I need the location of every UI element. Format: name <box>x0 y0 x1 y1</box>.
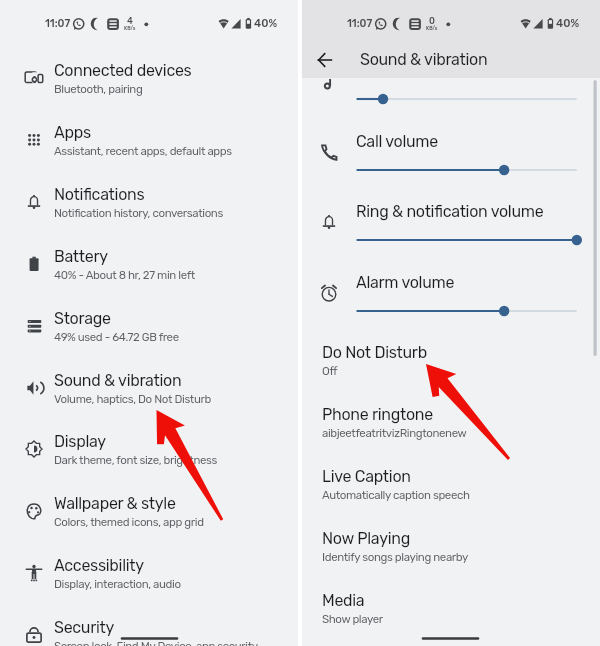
staticText: Apps <box>54 123 91 142</box>
staticText: Sound & vibration <box>54 371 182 390</box>
button[interactable]: Storage <box>0 306 298 350</box>
button[interactable]: Phone ringtone <box>302 402 600 446</box>
button[interactable]: Media <box>302 588 600 632</box>
staticText: Identify songs playing nearby <box>322 550 468 564</box>
staticText: Battery <box>54 247 108 266</box>
staticText: Ring & notification volume <box>356 202 544 221</box>
staticText: Security <box>54 618 115 637</box>
staticText: 40% <box>556 17 580 30</box>
staticText: 11:07 <box>347 17 373 29</box>
staticText: 40% - About 8 hr, 27 min left <box>54 268 195 282</box>
staticText: aibjeetfeatritvizRingtonenew <box>322 426 467 440</box>
staticText: Automatically caption speech <box>322 488 470 502</box>
button[interactable] <box>302 91 600 107</box>
button[interactable] <box>302 162 600 178</box>
staticText: Bluetooth, pairing <box>54 82 143 96</box>
staticText: Phone ringtone <box>322 405 433 424</box>
staticText: Connected devices <box>54 61 192 80</box>
button[interactable]: Call volume <box>302 129 600 157</box>
staticText: Display, interaction, audio <box>54 577 181 591</box>
staticText: Media <box>322 591 365 610</box>
staticText: Display <box>54 432 106 451</box>
button[interactable] <box>302 232 600 248</box>
button[interactable]: Battery <box>0 244 298 288</box>
button[interactable]: Notifications <box>0 182 298 226</box>
staticText: Screen lock, Find My Device, app securit… <box>54 639 258 646</box>
staticText: Storage <box>54 309 111 328</box>
button[interactable]: Back <box>311 46 339 74</box>
staticText: 11:07 <box>45 17 71 29</box>
staticText: Assistant, recent apps, default apps <box>54 144 232 158</box>
button[interactable]: Apps <box>0 120 298 164</box>
staticText: Call volume <box>356 132 438 151</box>
button[interactable]: Ring & notification volume <box>302 199 600 227</box>
staticText: Dark theme, font size, brightness <box>54 453 217 467</box>
staticText: 49% used - 64.72 GB free <box>54 330 179 344</box>
staticText: Show player <box>322 612 383 626</box>
staticText: Now Playing <box>322 529 410 548</box>
button[interactable]: Live Caption <box>302 464 600 508</box>
button[interactable]: Alarm volume <box>302 270 600 298</box>
button[interactable]: Sound & vibration <box>0 368 298 412</box>
staticText: Colors, themed icons, app grid <box>54 515 204 529</box>
staticText: 4 <box>127 16 133 27</box>
staticText: KB/s <box>124 25 136 31</box>
button[interactable]: Wallpaper & style <box>0 491 298 535</box>
staticText: Off <box>322 364 337 378</box>
staticText: 0 <box>429 16 435 27</box>
staticText: Notifications <box>54 185 145 204</box>
button[interactable]: Accessibility <box>0 553 298 597</box>
staticText: Accessibility <box>54 556 144 575</box>
staticText: Notification history, conversations <box>54 206 223 220</box>
staticText: Alarm volume <box>356 273 455 292</box>
button[interactable]: Security <box>0 615 298 646</box>
staticText: Volume, haptics, Do Not Disturb <box>54 392 211 406</box>
staticText: KB/s <box>426 25 438 31</box>
button[interactable] <box>302 303 600 319</box>
staticText: Live Caption <box>322 467 411 486</box>
button[interactable]: Now Playing <box>302 526 600 570</box>
staticText: Wallpaper & style <box>54 494 176 513</box>
staticText: 40% <box>254 17 278 30</box>
staticText: Do Not Disturb <box>322 343 427 362</box>
button[interactable]: Connected devices <box>0 58 298 102</box>
button[interactable]: Do Not Disturb <box>302 340 600 384</box>
button[interactable]: Display <box>0 429 298 473</box>
staticText: Sound & vibration <box>360 50 488 69</box>
